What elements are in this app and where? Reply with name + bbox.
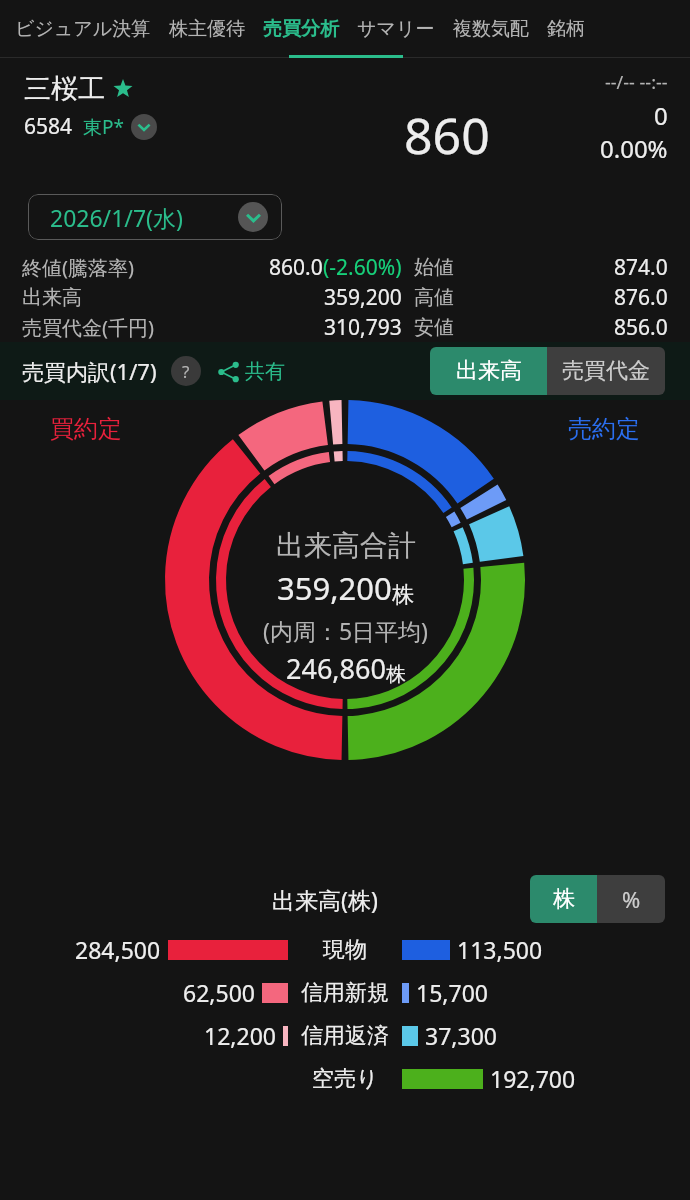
staticText: 出来高合計 [276,528,416,563]
staticText: 12,200 [204,1020,276,1051]
staticText: 株主優待 [169,17,245,41]
staticText: 6584 [24,112,73,141]
staticText: 15,700 [416,977,488,1008]
staticText: 買約定 [50,414,122,444]
staticText: 共有 [245,359,285,384]
staticText: 東P* [83,114,124,140]
staticText: 113,500 [457,934,543,965]
staticText: --/-- --:-- [605,70,668,95]
staticText: 出来高(株) [272,884,378,915]
staticText: 売買代金 [562,357,650,385]
staticText: 株 [386,662,406,687]
staticText: ? [182,360,190,383]
staticText: 284,500 [75,934,161,965]
button[interactable]: 株主優待 [160,0,254,58]
staticText: 860.0 [269,253,323,282]
staticText: (内周：5日平均) [263,615,428,646]
staticText: ビジュアル決算 [15,17,151,41]
staticText: 860 [404,101,490,169]
staticText: 売約定 [568,414,640,444]
button[interactable]: % [597,875,665,923]
staticText: 信用返済 [301,1022,389,1050]
button[interactable]: 出来高 [430,347,547,395]
staticText: 始値 [414,255,454,280]
staticText: 売買代金(千円) [22,314,154,341]
staticText: 空売り [312,1065,379,1093]
staticText: 37,300 [425,1020,497,1051]
button[interactable]: 2026/1/7(水) [28,194,282,240]
button[interactable]: Market menu [131,114,157,140]
button[interactable]: ビジュアル決算 [6,0,160,58]
staticText: 856.0 [614,313,668,342]
staticText: 出来高 [456,357,522,385]
staticText: % [622,884,641,914]
staticText: 株 [392,581,414,609]
staticText: 高値 [414,285,454,310]
button[interactable]: サマリー [348,0,444,58]
staticText: 売買分析 [263,17,339,41]
staticText: 310,793 [324,313,402,342]
staticText: 192,700 [490,1063,576,1094]
staticText: サマリー [357,17,435,41]
staticText: 売買内訳(1/7) [22,356,157,386]
button[interactable]: 複数気配 [444,0,538,58]
button[interactable]: 銘柄 [538,0,594,58]
staticText: 終値(騰落率) [22,254,134,281]
staticText: 安値 [414,315,454,340]
button[interactable]: 売買分析 [254,0,348,58]
staticText: 銘柄 [547,17,585,41]
staticText: 信用新規 [301,979,389,1007]
staticText: 株 [553,885,575,913]
staticText: 0.00% [600,132,668,165]
staticText: 0 [654,99,668,132]
button[interactable]: Help [171,356,201,386]
button[interactable]: 売買代金 [547,347,665,395]
button[interactable]: Share [217,359,285,384]
staticText: 359,200 [277,567,392,609]
staticText: 出来高 [22,285,82,310]
staticText: 2026/1/7(水) [50,202,183,233]
staticText: 62,500 [183,977,255,1008]
staticText: 246,860 [286,650,386,687]
staticText: (-2.60%) [323,253,402,282]
staticText: 359,200 [324,283,402,312]
staticText: 三桜工 [24,72,105,106]
other: Share [217,360,241,384]
staticText: 現物 [323,936,367,964]
button[interactable]: 株 [530,875,597,923]
staticText: 876.0 [614,283,668,312]
staticText: 874.0 [614,253,668,282]
staticText: 複数気配 [453,17,529,41]
